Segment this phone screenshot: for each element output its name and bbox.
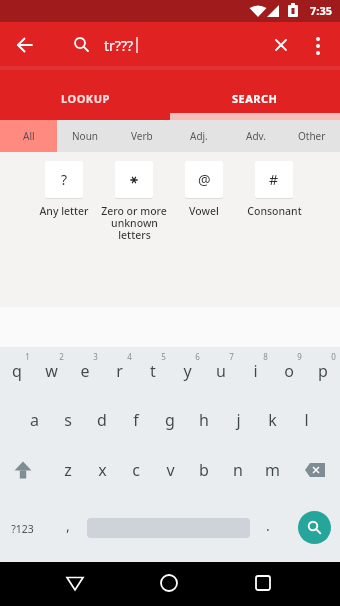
staticText: j bbox=[236, 409, 241, 431]
staticText: l bbox=[304, 409, 309, 431]
button[interactable]: u bbox=[204, 357, 238, 385]
button[interactable]: m bbox=[255, 456, 289, 484]
button[interactable]: Verb bbox=[113, 120, 170, 152]
button[interactable] bbox=[303, 31, 333, 61]
staticText: Vowel bbox=[189, 204, 219, 218]
staticText: u bbox=[216, 360, 226, 382]
staticText: h bbox=[199, 409, 209, 431]
staticText: k bbox=[268, 409, 277, 431]
button[interactable]: , bbox=[58, 511, 78, 539]
staticText: x bbox=[98, 459, 107, 481]
button[interactable]: j bbox=[221, 406, 255, 434]
staticText: s bbox=[64, 409, 72, 431]
staticText: , bbox=[66, 516, 70, 535]
staticText: SEARCH bbox=[232, 91, 278, 106]
staticText: f bbox=[133, 409, 139, 431]
button[interactable]: Adv. bbox=[227, 120, 284, 152]
button[interactable]: Noun bbox=[57, 120, 114, 152]
button[interactable]: c bbox=[119, 456, 153, 484]
button[interactable]: q bbox=[0, 357, 34, 385]
button[interactable]: s bbox=[51, 406, 85, 434]
button[interactable]: LOOKUP bbox=[0, 76, 170, 120]
button[interactable]: g bbox=[153, 406, 187, 434]
staticText: Noun bbox=[72, 129, 99, 143]
staticText: letters bbox=[118, 228, 151, 242]
staticText: i bbox=[253, 360, 258, 382]
staticText: d bbox=[97, 409, 107, 431]
button[interactable]: i bbox=[238, 357, 272, 385]
staticText: unknown bbox=[111, 216, 158, 230]
staticText: tr??? bbox=[104, 36, 134, 55]
staticText: 2 bbox=[59, 351, 64, 362]
button[interactable]: @ bbox=[185, 161, 223, 198]
staticText: 7 bbox=[229, 351, 234, 362]
staticText: z bbox=[64, 459, 72, 481]
button[interactable]: x bbox=[85, 456, 119, 484]
button[interactable] bbox=[115, 161, 153, 198]
button[interactable]: Other bbox=[283, 120, 340, 152]
staticText: 4 bbox=[127, 351, 132, 362]
button[interactable]: r bbox=[102, 357, 136, 385]
button[interactable] bbox=[8, 31, 42, 61]
button[interactable]: p bbox=[306, 357, 340, 385]
staticText: 0 bbox=[331, 351, 336, 362]
staticText: Zero or more bbox=[101, 204, 167, 218]
staticText: a bbox=[30, 409, 39, 431]
staticText: 7:35 bbox=[310, 3, 332, 18]
button[interactable] bbox=[295, 452, 335, 488]
button[interactable] bbox=[4, 452, 44, 488]
button[interactable]: b bbox=[187, 456, 221, 484]
button[interactable]: l bbox=[289, 406, 323, 434]
button[interactable]: h bbox=[187, 406, 221, 434]
button[interactable]: y bbox=[170, 357, 204, 385]
staticText: 6 bbox=[195, 351, 200, 362]
staticText: Adv. bbox=[246, 129, 266, 143]
staticText: . bbox=[266, 516, 270, 535]
staticText: m bbox=[265, 459, 280, 481]
staticText: y bbox=[183, 360, 192, 382]
button[interactable]: w bbox=[34, 357, 68, 385]
staticText: e bbox=[80, 360, 90, 382]
staticText: 9 bbox=[297, 351, 302, 362]
staticText: o bbox=[284, 360, 294, 382]
staticText: Other bbox=[298, 129, 326, 143]
button[interactable]: d bbox=[85, 406, 119, 434]
staticText: t bbox=[150, 360, 156, 382]
staticText: # bbox=[269, 170, 279, 189]
button[interactable]: All bbox=[0, 120, 57, 152]
staticText: Adj. bbox=[190, 129, 208, 143]
button[interactable]: ?123 bbox=[0, 515, 44, 543]
staticText: 8 bbox=[263, 351, 268, 362]
button[interactable]: Adj. bbox=[170, 120, 227, 152]
button[interactable]: # bbox=[255, 161, 293, 198]
button[interactable]: . bbox=[258, 511, 278, 539]
button[interactable] bbox=[243, 562, 283, 606]
staticText: g bbox=[165, 409, 175, 431]
button[interactable]: t bbox=[136, 357, 170, 385]
button[interactable]: o bbox=[272, 357, 306, 385]
staticText: Verb bbox=[131, 129, 153, 143]
button[interactable] bbox=[298, 511, 331, 544]
button[interactable]: k bbox=[255, 406, 289, 434]
button[interactable]: n bbox=[221, 456, 255, 484]
button[interactable] bbox=[55, 562, 95, 606]
button[interactable]: ? bbox=[45, 161, 83, 198]
staticText: ?123 bbox=[11, 522, 34, 536]
staticText: All bbox=[23, 129, 35, 143]
staticText: @ bbox=[198, 170, 211, 189]
button[interactable]: a bbox=[17, 406, 51, 434]
button[interactable]: z bbox=[51, 456, 85, 484]
button[interactable]: SEARCH bbox=[170, 76, 340, 120]
button[interactable]: v bbox=[153, 456, 187, 484]
button[interactable] bbox=[266, 31, 296, 61]
staticText: p bbox=[318, 360, 328, 382]
button[interactable]: f bbox=[119, 406, 153, 434]
staticText: c bbox=[132, 459, 140, 481]
staticText: 5 bbox=[161, 351, 166, 362]
staticText: b bbox=[199, 459, 209, 481]
button[interactable]: e bbox=[68, 357, 102, 385]
staticText: r bbox=[116, 360, 123, 382]
button[interactable] bbox=[149, 562, 189, 606]
staticText: LOOKUP bbox=[61, 91, 110, 106]
